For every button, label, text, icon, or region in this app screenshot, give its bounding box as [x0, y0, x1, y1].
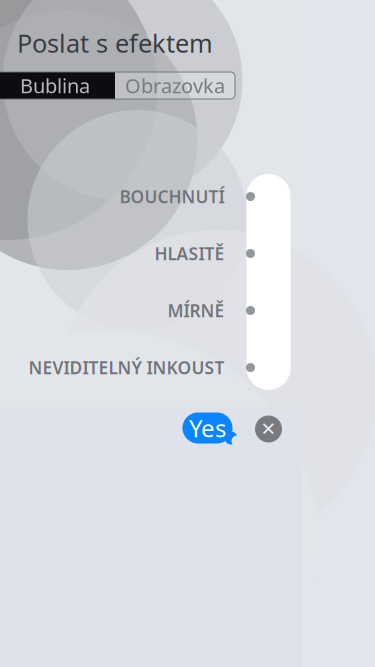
staticText: BOUCHNUTÍ	[119, 185, 224, 208]
button[interactable]: BOUCHNUTÍ	[0, 182, 268, 210]
button[interactable]: Close	[250, 411, 286, 447]
staticText: NEVIDITELNÝ INKOUST	[28, 356, 224, 379]
button[interactable]: HLASITĚ	[0, 239, 268, 267]
staticText: Bublina	[20, 72, 90, 99]
staticText: ✕	[260, 418, 276, 440]
button[interactable]: Bublina	[0, 72, 115, 99]
staticText: Obrazovka	[125, 72, 225, 99]
staticText: Poslat s efektem	[17, 26, 213, 60]
button[interactable]: Obrazovka	[115, 72, 235, 99]
button[interactable]: MÍRNĚ	[0, 296, 268, 324]
staticText: Yes	[189, 412, 226, 444]
staticText: HLASITĚ	[154, 242, 224, 265]
button[interactable]: NEVIDITELNÝ INKOUST	[0, 353, 268, 381]
staticText: MÍRNĚ	[167, 299, 224, 322]
